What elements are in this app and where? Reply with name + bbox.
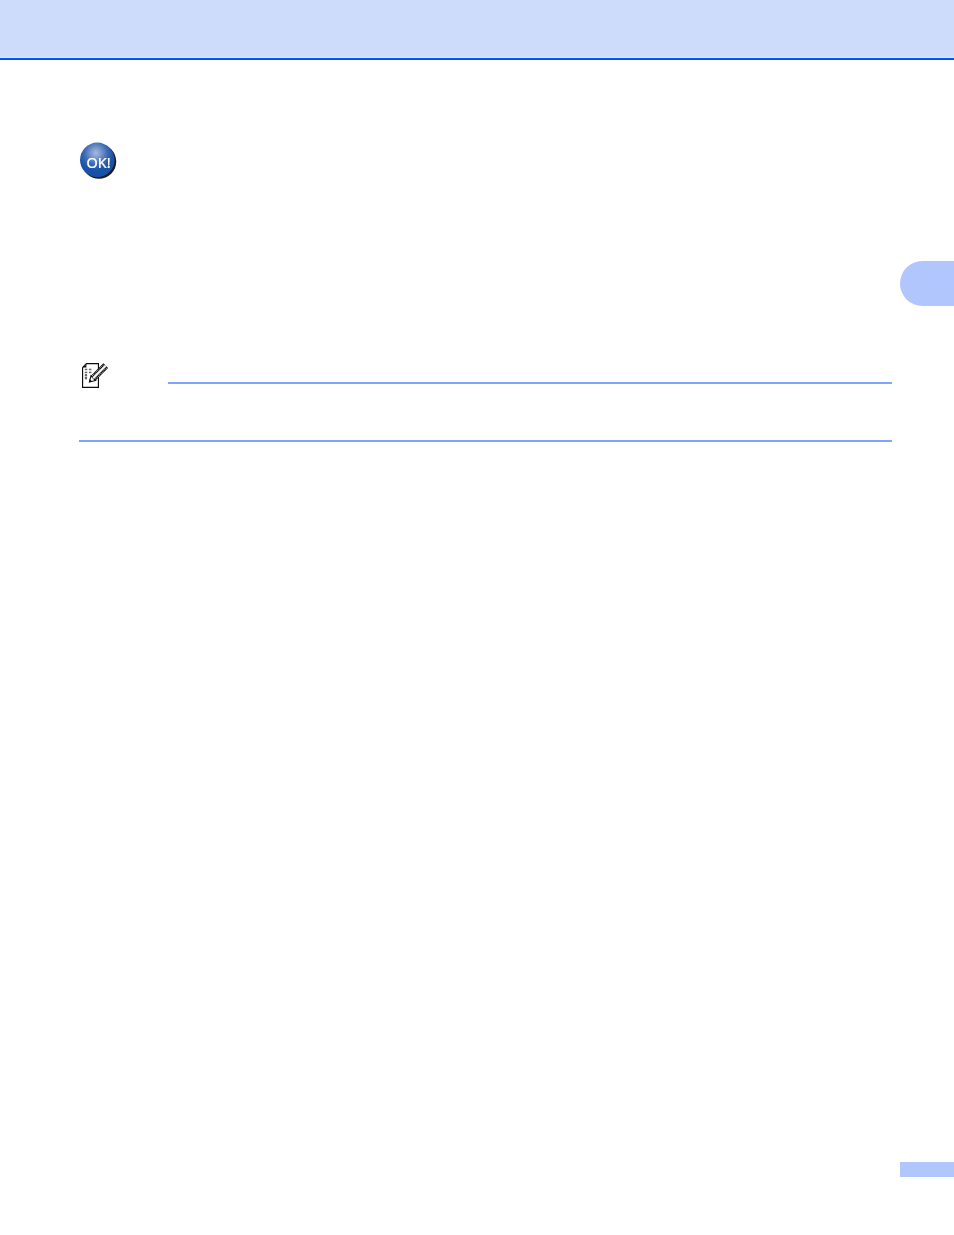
staticText: OK! xyxy=(86,153,111,173)
button[interactable]: OK xyxy=(79,142,119,182)
button[interactable]: Chapter tab xyxy=(900,261,954,306)
